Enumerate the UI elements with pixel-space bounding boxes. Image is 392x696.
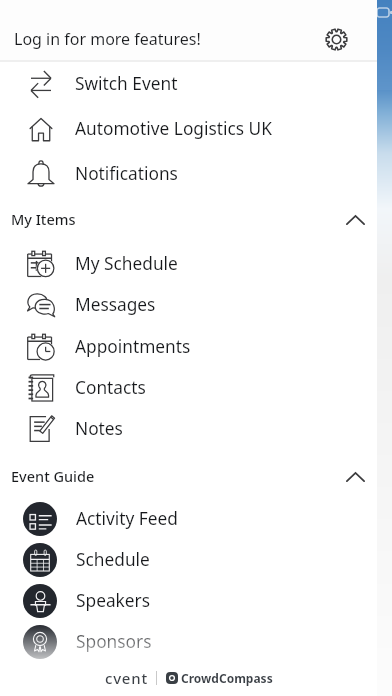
- button[interactable]: Notes: [0, 408, 377, 449]
- button[interactable]: Speakers: [0, 580, 377, 621]
- button[interactable]: Settings: [314, 17, 358, 61]
- staticText: Appointments: [75, 335, 191, 359]
- button[interactable]: Event Guide: [0, 454, 377, 498]
- staticText: Messages: [75, 293, 156, 317]
- staticText: Contacts: [75, 376, 146, 400]
- staticText: My Items: [11, 209, 333, 229]
- button[interactable]: Contacts: [0, 367, 377, 408]
- button[interactable]: My Items: [0, 197, 377, 241]
- staticText: CrowdCompass: [181, 670, 273, 686]
- staticText: Notes: [75, 417, 123, 441]
- button[interactable]: Notifications: [0, 151, 377, 196]
- button[interactable]: Automotive Logistics UK: [0, 106, 377, 151]
- staticText: Log in for more features!: [14, 28, 201, 50]
- button[interactable]: Switch Event: [0, 61, 377, 106]
- button[interactable]: Schedule: [0, 539, 377, 580]
- staticText: Switch Event: [75, 72, 178, 96]
- staticText: cvent: [105, 668, 149, 688]
- staticText: Event Guide: [11, 466, 333, 486]
- staticText: Speakers: [76, 589, 151, 613]
- button[interactable]: Activity Feed: [0, 498, 377, 539]
- staticText: My Schedule: [75, 252, 178, 276]
- button[interactable]: Sponsors: [0, 621, 377, 662]
- staticText: Schedule: [76, 548, 150, 572]
- staticText: Notifications: [75, 162, 178, 186]
- button[interactable]: Appointments: [0, 326, 377, 367]
- button[interactable]: My Schedule: [0, 243, 377, 284]
- staticText: Activity Feed: [76, 507, 178, 531]
- staticText: Automotive Logistics UK: [75, 117, 272, 141]
- button[interactable]: Messages: [0, 284, 377, 325]
- staticText: Sponsors: [76, 630, 152, 654]
